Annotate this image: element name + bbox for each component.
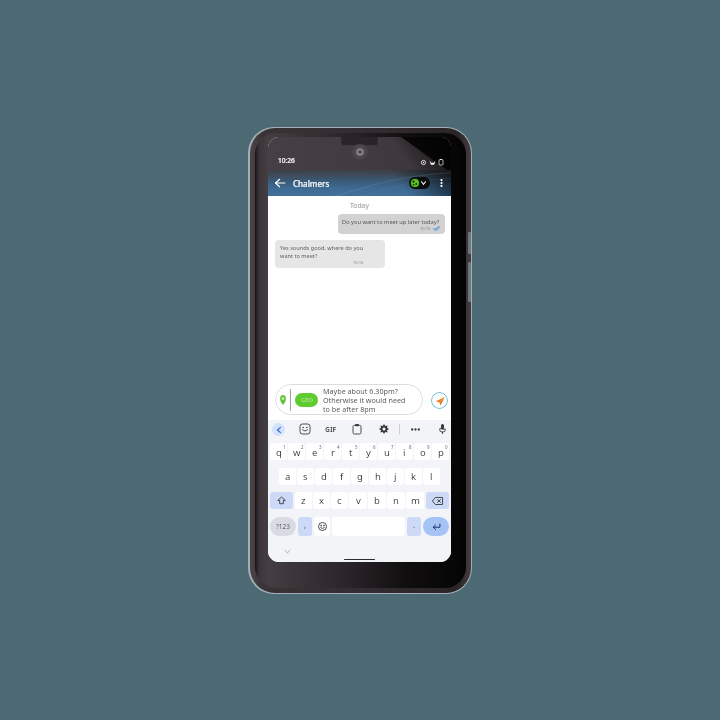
button[interactable]: 4 (324, 443, 341, 460)
button[interactable]: a (279, 468, 296, 485)
button[interactable]: m (406, 492, 424, 509)
button[interactable]: Location (275, 384, 423, 415)
staticText: w (293, 446, 301, 459)
button[interactable]: Show keyboard toolbar (272, 423, 285, 436)
button[interactable]: Enter (423, 517, 449, 536)
staticText: Yes sounds good, where do you want to me… (280, 244, 364, 260)
staticText: 10:16 (420, 226, 431, 231)
staticText: l (430, 470, 433, 483)
staticText: c (337, 494, 342, 507)
staticText: Do you want to meet up later today? (342, 218, 440, 226)
staticText: x (319, 494, 325, 507)
button[interactable]: z (295, 492, 312, 509)
staticText: Chalmers (293, 178, 330, 189)
button[interactable]: n (387, 492, 405, 509)
staticText: 2 (301, 444, 304, 450)
staticText: y (366, 446, 371, 459)
staticText: b (374, 494, 380, 507)
staticText: r (331, 446, 335, 459)
button[interactable]: Backspace (426, 492, 449, 509)
button[interactable]: 9 (414, 443, 431, 460)
staticText: k (411, 470, 417, 483)
button[interactable]: Back (271, 174, 289, 192)
button[interactable]: 3 (306, 443, 323, 460)
button[interactable]: Emoji (314, 517, 330, 536)
button[interactable]: Do you want to meet up later today? (338, 214, 445, 234)
button[interactable]: 7 (378, 443, 395, 460)
staticText: h (375, 470, 381, 483)
staticText: 9 (427, 444, 430, 450)
button[interactable]: Voice input (435, 422, 449, 436)
staticText: 0 (445, 444, 448, 450)
button[interactable]: More (408, 422, 422, 436)
button[interactable]: 2 (288, 443, 305, 460)
button[interactable]: 1 (270, 443, 287, 460)
staticText: GEO (301, 396, 313, 404)
staticText: d (321, 470, 327, 483)
staticText: Today (350, 201, 369, 210)
button[interactable]: f (333, 468, 350, 485)
staticText: m (411, 494, 420, 507)
staticText: i (403, 446, 406, 459)
button[interactable]: Shift (270, 492, 293, 509)
staticText: g (357, 470, 363, 483)
button[interactable]: d (315, 468, 332, 485)
staticText: 3 (319, 444, 322, 450)
button[interactable]: Translate (409, 177, 430, 189)
button[interactable]: 8 (396, 443, 413, 460)
staticText: ?123 (276, 522, 290, 531)
button[interactable]: . (407, 517, 421, 536)
staticText: 5 (355, 444, 358, 450)
staticText: 6 (373, 444, 376, 450)
staticText: . (413, 519, 416, 530)
button[interactable]: 6 (360, 443, 377, 460)
button[interactable]: h (369, 468, 386, 485)
staticText: 4 (337, 444, 340, 450)
button[interactable]: ?123 (270, 517, 296, 536)
button[interactable]: l (423, 468, 440, 485)
staticText: , (304, 519, 307, 530)
staticText: 10:26 (278, 156, 295, 165)
button[interactable]: s (297, 468, 314, 485)
staticText: q (276, 446, 282, 459)
button[interactable]: Settings (377, 422, 391, 436)
staticText: v (356, 494, 361, 507)
other: Location (279, 395, 287, 405)
button[interactable]: g (351, 468, 368, 485)
staticText: 1 (283, 444, 286, 450)
staticText: 7 (391, 444, 394, 450)
staticText: f (340, 470, 344, 483)
staticText: n (393, 494, 399, 507)
button[interactable]: Clipboard (350, 422, 364, 436)
staticText: s (303, 470, 308, 483)
staticText: z (301, 494, 306, 507)
staticText: 10:16 (353, 260, 364, 265)
staticText: 8 (409, 444, 412, 450)
button[interactable]: v (349, 492, 367, 509)
button[interactable]: More options (433, 175, 449, 191)
button[interactable]: GIF (322, 422, 340, 436)
staticText: a (285, 470, 291, 483)
button[interactable]: 5 (342, 443, 359, 460)
staticText: GIF (325, 425, 337, 434)
button[interactable]: , (298, 517, 312, 536)
button[interactable]: Stickers (298, 422, 312, 436)
button[interactable]: Send (431, 392, 448, 409)
staticText: Maybe about 6.30pm? Otherwise it would n… (323, 386, 406, 414)
button[interactable]: Yes sounds good, where do you want to me… (275, 240, 385, 268)
staticText: p (438, 446, 444, 459)
staticText: t (349, 446, 353, 459)
button[interactable]: k (405, 468, 422, 485)
button[interactable]: b (368, 492, 386, 509)
staticText: u (384, 446, 390, 459)
button[interactable]: x (313, 492, 330, 509)
button[interactable]: c (331, 492, 348, 509)
staticText: e (312, 446, 318, 459)
button[interactable]: 0 (432, 443, 449, 460)
staticText: j (394, 470, 397, 483)
button[interactable]: j (387, 468, 404, 485)
staticText: o (420, 446, 426, 459)
